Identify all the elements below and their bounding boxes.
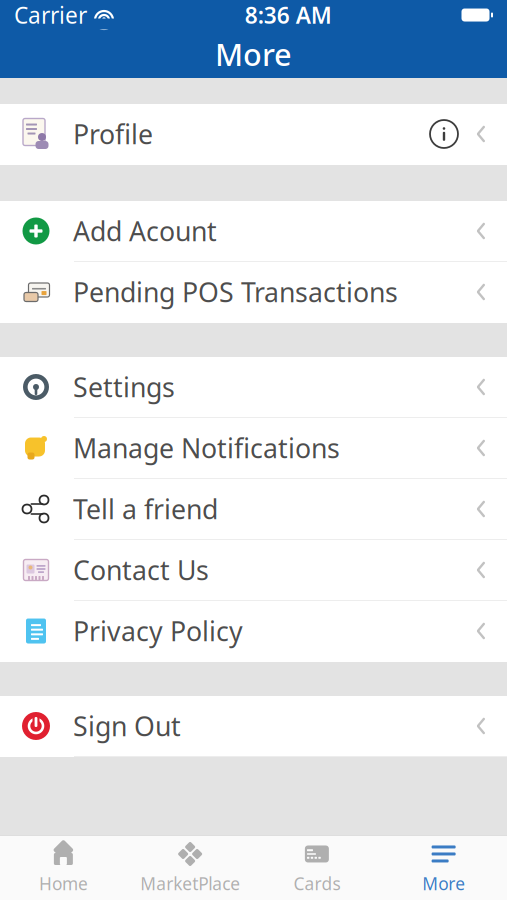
button[interactable]: Contact Us [0, 540, 507, 601]
button[interactable]: Home [0, 836, 127, 900]
button[interactable]: Cards [253, 836, 380, 900]
staticText: MarketPlace [140, 872, 240, 895]
staticText: Manage Notifications [73, 430, 340, 466]
button[interactable]: Manage Notifications [0, 418, 507, 479]
staticText: Home [39, 872, 88, 895]
button[interactable]: Pending POS Transactions [0, 262, 507, 323]
staticText: More [422, 872, 465, 895]
staticText: Carrier [14, 0, 87, 30]
button[interactable]: MarketPlace [127, 836, 254, 900]
staticText: Pending POS Transactions [73, 274, 398, 310]
button[interactable]: Privacy Policy [0, 601, 507, 662]
staticText: Tell a friend [73, 491, 218, 527]
button[interactable]: More [380, 836, 507, 900]
staticText: Contact Us [73, 552, 209, 588]
button[interactable]: Settings [0, 357, 507, 418]
staticText: More [215, 34, 292, 74]
staticText: Privacy Policy [73, 613, 243, 649]
staticText: Sign Out [73, 708, 181, 744]
button[interactable]: Tell a friend [0, 479, 507, 540]
staticText: Settings [73, 369, 175, 405]
staticText: Cards [293, 872, 340, 895]
button[interactable]: Add Acount [0, 201, 507, 262]
button[interactable]: Profile [0, 104, 507, 165]
staticText: 8:36 AM [245, 0, 332, 30]
button[interactable]: Sign Out [0, 696, 507, 757]
staticText: Profile [73, 116, 153, 152]
staticText: Add Acount [73, 213, 217, 249]
